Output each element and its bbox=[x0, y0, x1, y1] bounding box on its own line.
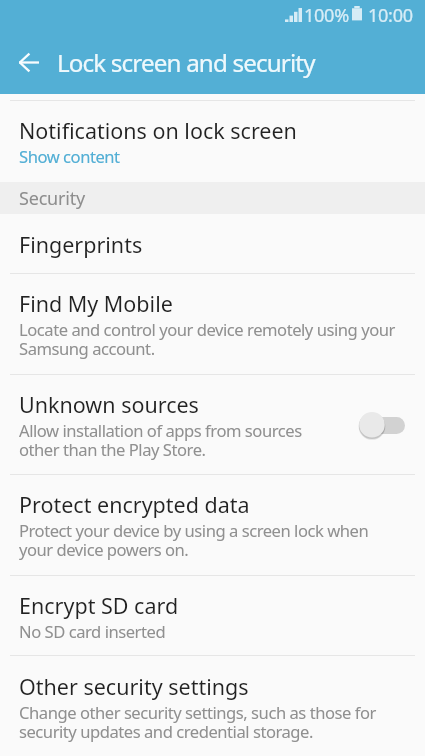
staticText: 10:00 bbox=[368, 3, 413, 28]
button[interactable]: Unknown sources switch, off bbox=[358, 411, 405, 439]
staticText: Locate and control your device remotely … bbox=[19, 318, 395, 360]
staticText: Protect your device by using a screen lo… bbox=[19, 519, 369, 561]
staticText: Lock screen and security bbox=[57, 46, 315, 79]
staticText: Find My Mobile bbox=[19, 289, 173, 318]
staticText: No SD card inserted bbox=[19, 620, 166, 643]
staticText: Unknown sources bbox=[19, 390, 199, 419]
button[interactable]: Notifications on lock screen bbox=[0, 101, 425, 182]
staticText: Other security settings bbox=[19, 672, 249, 701]
staticText: Fingerprints bbox=[19, 230, 143, 259]
staticText: Change other security settings, such as … bbox=[19, 701, 376, 743]
staticText: Allow installation of apps from sources … bbox=[19, 419, 302, 461]
staticText: Protect encrypted data bbox=[19, 490, 250, 519]
staticText: Show content bbox=[19, 145, 120, 168]
button[interactable]: Encrypt SD card bbox=[0, 576, 425, 655]
button[interactable]: Other security settings bbox=[0, 656, 425, 756]
button[interactable]: Protect encrypted data bbox=[0, 475, 425, 575]
button[interactable]: Find My Mobile bbox=[0, 274, 425, 374]
button[interactable]: Back bbox=[0, 34, 57, 91]
staticText: Security bbox=[19, 186, 85, 211]
button[interactable]: Fingerprints bbox=[0, 214, 425, 273]
staticText: 100% bbox=[304, 3, 349, 28]
button[interactable]: Unknown sources bbox=[0, 375, 425, 474]
staticText: Encrypt SD card bbox=[19, 591, 179, 620]
staticText: Notifications on lock screen bbox=[19, 116, 297, 145]
